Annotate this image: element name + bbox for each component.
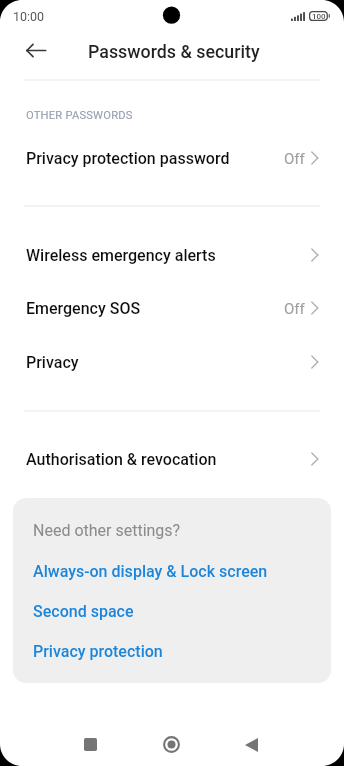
button[interactable]: Privacy protection password [0,131,344,185]
staticText: Need other settings? [33,521,181,540]
button[interactable]: Home [147,720,195,766]
staticText: 100 [312,12,326,21]
staticText: 10:00 [13,9,45,24]
button[interactable]: Authorisation & revocation [0,432,344,486]
staticText: Emergency SOS [26,299,141,318]
button[interactable]: Privacy [0,335,344,389]
staticText: OTHER PASSWORDS [26,109,133,122]
staticText: Privacy protection [33,642,163,661]
button[interactable]: Recents [66,720,114,766]
staticText: Off [284,150,305,168]
staticText: Authorisation & revocation [26,450,217,469]
staticText: Passwords & security [88,41,260,62]
staticText: Always-on display & Lock screen [33,562,268,581]
button[interactable]: Second space [13,594,331,622]
button[interactable]: Always-on display & Lock screen [13,554,331,582]
button[interactable]: Privacy protection [13,634,331,662]
button[interactable]: Emergency SOS [0,281,344,335]
button[interactable]: Back [227,721,275,766]
staticText: Privacy protection password [26,149,230,168]
button[interactable]: Back [14,28,58,72]
staticText: Off [284,300,305,318]
staticText: Wireless emergency alerts [26,246,216,265]
staticText: Second space [33,602,134,621]
staticText: Privacy [26,353,79,372]
button[interactable]: Wireless emergency alerts [0,228,344,282]
